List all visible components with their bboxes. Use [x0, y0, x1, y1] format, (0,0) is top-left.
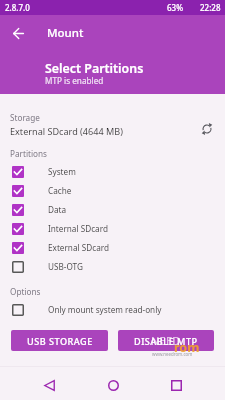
- button[interactable]: External SDcard: [0, 238, 225, 257]
- staticText: System: [48, 166, 76, 177]
- button[interactable]: Navigate up: [5, 20, 31, 46]
- staticText: MTP is enabled: [45, 75, 104, 86]
- staticText: Only mount system read-only: [48, 304, 162, 315]
- staticText: 22:28: [200, 2, 221, 13]
- button[interactable]: USB STORAGE: [11, 330, 108, 351]
- staticText: USB STORAGE: [27, 335, 93, 347]
- staticText: 63%: [167, 2, 183, 13]
- button[interactable]: System: [0, 162, 225, 181]
- staticText: DISABLE MTP: [134, 335, 198, 347]
- button[interactable]: USB-OTG: [0, 257, 225, 276]
- staticText: Options: [10, 286, 41, 297]
- staticText: Select Partitions: [45, 60, 144, 77]
- button[interactable]: Cache: [0, 181, 225, 200]
- staticText: USB-OTG: [48, 261, 83, 272]
- staticText: 2.8.7.0: [5, 2, 30, 13]
- staticText: Data: [48, 204, 67, 215]
- button[interactable]: Home: [100, 372, 126, 398]
- staticText: Cache: [48, 185, 72, 196]
- staticText: Partitions: [10, 148, 47, 159]
- staticText: Storage: [10, 112, 40, 123]
- button[interactable]: Internal SDcard: [0, 219, 225, 238]
- staticText: www.needrom.com: [152, 351, 193, 357]
- button[interactable]: Refresh: [195, 117, 218, 140]
- staticText: External SDcard: [48, 242, 109, 253]
- button[interactable]: Recent apps: [163, 372, 189, 398]
- staticText: Mount: [47, 25, 84, 41]
- staticText: NEED: [151, 333, 181, 348]
- staticText: rom: [174, 339, 200, 356]
- staticText: Internal SDcard: [48, 223, 108, 234]
- button[interactable]: Only mount system read-only: [0, 300, 225, 319]
- button[interactable]: Data: [0, 200, 225, 219]
- button[interactable]: Back: [36, 372, 62, 398]
- staticText: External SDcard (4644 MB): [10, 125, 123, 137]
- button[interactable]: DISABLE MTP: [118, 330, 214, 351]
